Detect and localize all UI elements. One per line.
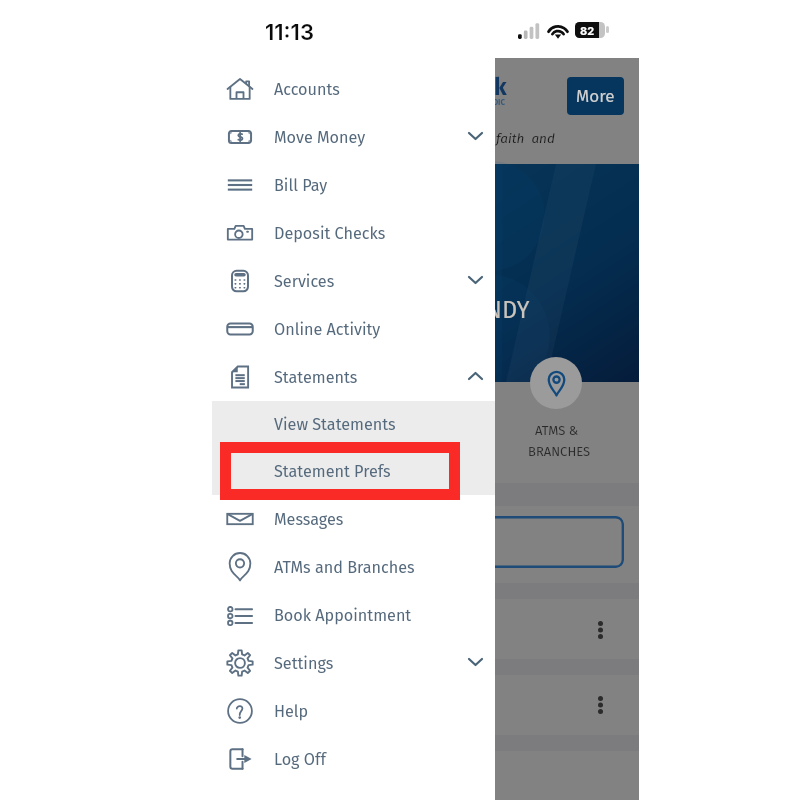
staticText: FDIC: [489, 98, 506, 108]
button[interactable]: Messages: [0, 495, 495, 543]
staticText: Accounts: [274, 80, 340, 99]
staticText: ATMs and Branches: [274, 558, 415, 577]
button[interactable]: Log Off: [0, 735, 495, 783]
staticText: Help: [274, 702, 309, 721]
button[interactable]: ATMs and Branches: [530, 357, 582, 409]
button[interactable]: Book Appointment: [0, 591, 495, 639]
staticText: faith and: [496, 130, 555, 146]
staticText: NDY: [486, 296, 530, 324]
button[interactable]: Statements: [0, 353, 495, 401]
staticText: More: [576, 86, 615, 106]
button[interactable]: View Statements: [0, 401, 495, 448]
button[interactable]: More options: [585, 615, 615, 645]
button[interactable]: Outlined action button: [432, 516, 624, 568]
button[interactable]: Settings: [0, 639, 495, 687]
staticText: Statements: [274, 368, 358, 387]
staticText: Bill Pay: [274, 176, 328, 195]
button[interactable]: More options: [585, 690, 615, 720]
button[interactable]: Deposit Checks: [0, 209, 495, 257]
staticText: Log Off: [274, 750, 326, 769]
button[interactable]: Accounts: [0, 65, 495, 113]
staticText: BRANCHES: [528, 444, 591, 460]
button[interactable]: Services: [0, 257, 495, 305]
staticText: View Statements: [274, 415, 396, 434]
staticText: Messages: [274, 510, 344, 529]
staticText: Book Appointment: [274, 606, 412, 625]
staticText: 82: [580, 24, 595, 37]
button[interactable]: Move Money: [0, 113, 495, 161]
staticText: Services: [274, 272, 335, 291]
staticText: 11:13: [265, 19, 314, 46]
button[interactable]: More: [567, 77, 624, 115]
button[interactable]: Bill Pay: [0, 161, 495, 209]
button[interactable]: Help: [0, 687, 495, 735]
staticText: Online Activity: [274, 320, 381, 339]
staticText: Move Money: [274, 128, 366, 147]
button[interactable]: Statement Prefs: [0, 448, 495, 495]
staticText: k: [494, 73, 507, 101]
button[interactable]: Online Activity: [0, 305, 495, 353]
staticText: Settings: [274, 654, 334, 673]
button[interactable]: ATMs and Branches: [0, 543, 495, 591]
staticText: Deposit Checks: [274, 224, 386, 243]
staticText: ATMS &: [535, 423, 579, 439]
staticText: Statement Prefs: [274, 462, 391, 481]
